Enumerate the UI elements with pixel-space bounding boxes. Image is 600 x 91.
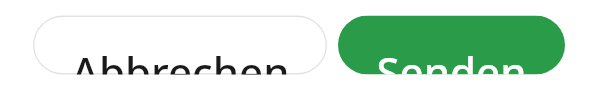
button[interactable]: Senden: [338, 15, 565, 74]
staticText: Abbrechen: [71, 42, 290, 74]
button[interactable]: Abbrechen: [33, 15, 327, 74]
staticText: Senden: [376, 42, 527, 74]
